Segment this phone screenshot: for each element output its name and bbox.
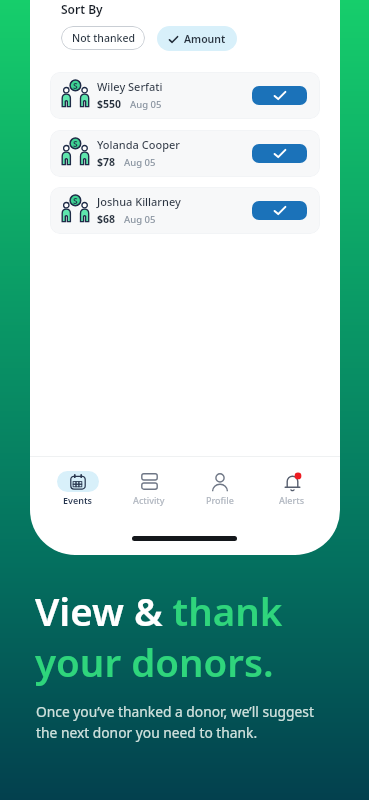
- button[interactable]: Amount: [157, 26, 237, 51]
- staticText: Sort By: [61, 1, 103, 17]
- staticText: Amount: [184, 32, 226, 46]
- staticText: S: [73, 195, 78, 207]
- staticText: $68: [97, 212, 116, 226]
- button[interactable]: S: [50, 187, 320, 234]
- staticText: Aug 05: [130, 98, 162, 111]
- button[interactable]: Not thanked: [61, 26, 145, 50]
- button[interactable]: Alerts: [256, 471, 328, 506]
- staticText: Events: [63, 494, 93, 506]
- staticText: S: [73, 80, 78, 92]
- button[interactable]: [252, 201, 307, 220]
- staticText: Aug 05: [124, 213, 156, 226]
- button[interactable]: S: [50, 72, 320, 119]
- staticText: your donors.: [35, 636, 274, 688]
- staticText: Aug 05: [124, 156, 156, 169]
- staticText: $550: [97, 97, 122, 111]
- staticText: Profile: [206, 494, 234, 506]
- button[interactable]: [252, 144, 307, 163]
- button[interactable]: S: [50, 130, 320, 177]
- button[interactable]: Activity: [113, 471, 184, 506]
- staticText: Joshua Killarney: [97, 194, 181, 209]
- button[interactable]: Profile: [184, 471, 256, 506]
- staticText: Yolanda Cooper: [97, 137, 180, 152]
- staticText: S: [73, 138, 78, 150]
- staticText: Not thanked: [72, 31, 135, 45]
- staticText: Alerts: [279, 494, 305, 506]
- button[interactable]: [252, 86, 307, 105]
- button[interactable]: Events: [42, 471, 113, 506]
- staticText: $78: [97, 155, 116, 169]
- staticText: View & thank: [35, 585, 283, 637]
- staticText: Once you’ve thanked a donor, we’ll sugge…: [36, 702, 314, 742]
- staticText: Activity: [133, 494, 165, 506]
- staticText: Wiley Serfati: [97, 79, 163, 94]
